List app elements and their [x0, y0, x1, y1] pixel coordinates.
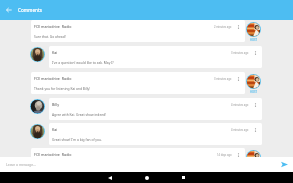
staticText: Agree with Kai. Great show indeed! — [52, 112, 107, 116]
button[interactable]: More options — [252, 49, 259, 56]
staticText: 3 minutes ago — [231, 51, 249, 55]
staticText: Kai — [52, 50, 231, 55]
button[interactable]: More options — [235, 23, 242, 30]
staticText: Leave a message... — [6, 162, 280, 167]
button[interactable]: More options — [235, 151, 242, 158]
staticText: Great show! I'm a big fan of you. — [52, 137, 102, 141]
staticText: FCE mariodrive Radio — [34, 24, 214, 29]
staticText: Kai — [52, 127, 231, 132]
button[interactable]: Kai — [49, 46, 262, 68]
staticText: 4 minutes ago — [231, 128, 249, 132]
button[interactable]: Send — [280, 160, 289, 169]
button[interactable]: Kai — [49, 123, 262, 145]
button[interactable]: Back — [4, 5, 14, 15]
staticText: HOST — [250, 38, 258, 42]
button[interactable]: More options — [252, 101, 259, 108]
staticText: 14 days ago — [217, 153, 232, 157]
button[interactable]: More options — [252, 126, 259, 133]
staticText: HOST — [250, 90, 258, 94]
staticText: FCE mariodrive Radio — [34, 76, 214, 81]
button[interactable]: FCE mariodrive Radio — [31, 148, 245, 170]
staticText: I've a question! would like to ask. May … — [52, 60, 114, 64]
button[interactable]: FCE mariodrive Radio — [31, 72, 245, 94]
button[interactable]: Billy — [49, 98, 262, 120]
staticText: Thank you for listening Kai and Billy! — [34, 86, 91, 90]
staticText: Sure that. Go ahead! — [34, 34, 66, 38]
button[interactable]: Back — [104, 172, 115, 183]
button[interactable]: Recents — [178, 172, 189, 183]
staticText: 2 minutes ago — [214, 25, 232, 29]
staticText: Comments — [18, 7, 42, 13]
staticText: Billy — [52, 102, 231, 107]
staticText: 4 minutes ago — [231, 103, 249, 107]
button[interactable]: More options — [235, 75, 242, 82]
staticText: 3 minutes ago — [214, 77, 232, 81]
staticText: FCE mariodrive Radio — [34, 152, 217, 157]
button[interactable]: FCE mariodrive Radio — [31, 20, 245, 42]
button[interactable]: Home — [141, 172, 152, 183]
